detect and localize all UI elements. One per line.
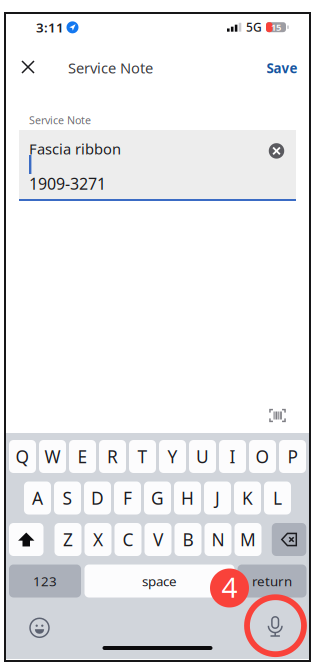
staticText: 15	[271, 21, 281, 33]
staticText: 1909-3271	[29, 173, 106, 194]
staticText: 3:11	[36, 18, 64, 36]
button[interactable]: F	[114, 481, 141, 514]
staticText: Z	[63, 528, 73, 551]
staticText: O	[255, 445, 269, 468]
staticText: L	[273, 486, 282, 509]
button[interactable]: L	[264, 481, 291, 514]
staticText: U	[196, 445, 209, 468]
staticText: W	[44, 445, 60, 468]
button[interactable]: S	[54, 481, 81, 514]
staticText: T	[137, 445, 147, 468]
button[interactable]: U	[189, 440, 216, 473]
staticText: return	[252, 572, 292, 590]
staticText: N	[211, 528, 224, 551]
staticText: A	[32, 486, 43, 509]
button[interactable]: B	[174, 523, 201, 556]
staticText: G	[151, 486, 164, 509]
button[interactable]: Shift	[9, 523, 43, 556]
button[interactable]: H	[174, 481, 201, 514]
button[interactable]: space	[84, 564, 234, 597]
button[interactable]: Emoji keyboard	[24, 613, 54, 643]
staticText: C	[122, 528, 133, 551]
button[interactable]: A	[24, 481, 51, 514]
button[interactable]: T	[129, 440, 156, 473]
button[interactable]: J	[204, 481, 231, 514]
staticText: Save	[266, 59, 297, 77]
staticText: B	[182, 528, 193, 551]
button[interactable]: R	[99, 440, 126, 473]
button[interactable]: E	[69, 440, 96, 473]
staticText: Q	[15, 445, 29, 468]
staticText: 123	[33, 572, 57, 590]
staticText: 5G	[246, 19, 262, 35]
staticText: 4	[221, 568, 237, 606]
button[interactable]: Save	[261, 52, 303, 84]
button[interactable]: O	[249, 440, 276, 473]
button[interactable]: I	[219, 440, 246, 473]
button[interactable]: N	[204, 523, 231, 556]
staticText: X	[93, 528, 103, 551]
button[interactable]: M	[234, 523, 261, 556]
staticText: S	[62, 486, 72, 509]
button[interactable]: 123	[9, 564, 81, 597]
button[interactable]: C	[114, 523, 141, 556]
button[interactable]: P	[279, 440, 306, 473]
staticText: space	[142, 572, 177, 590]
staticText: E	[77, 445, 87, 468]
staticText: H	[181, 486, 194, 509]
button[interactable]: W	[39, 440, 66, 473]
staticText: M	[240, 528, 256, 551]
staticText: K	[242, 486, 253, 509]
staticText: V	[153, 528, 163, 551]
staticText: D	[91, 486, 104, 509]
button[interactable]: X	[84, 523, 111, 556]
button[interactable]: Clear text	[262, 137, 290, 165]
staticText: Y	[167, 445, 177, 468]
button[interactable]: D	[84, 481, 111, 514]
staticText: Service Note	[68, 58, 153, 77]
button[interactable]: Close	[12, 51, 44, 83]
staticText: F	[123, 486, 132, 509]
button[interactable]: Delete	[272, 523, 306, 556]
staticText: Fascia ribbon	[29, 139, 121, 158]
staticText: P	[287, 445, 297, 468]
button[interactable]: Q	[9, 440, 36, 473]
button[interactable]: G	[144, 481, 171, 514]
staticText: J	[215, 486, 220, 509]
button[interactable]: return	[237, 564, 306, 597]
staticText: Service Note	[29, 113, 91, 127]
button[interactable]: Y	[159, 440, 186, 473]
button[interactable]: V	[144, 523, 171, 556]
button[interactable]: K	[234, 481, 261, 514]
staticText: I	[229, 445, 235, 468]
button[interactable]: Dictate	[260, 611, 290, 641]
staticText: R	[107, 445, 118, 468]
button[interactable]: Scan barcode	[263, 403, 291, 427]
button[interactable]: Z	[54, 523, 81, 556]
